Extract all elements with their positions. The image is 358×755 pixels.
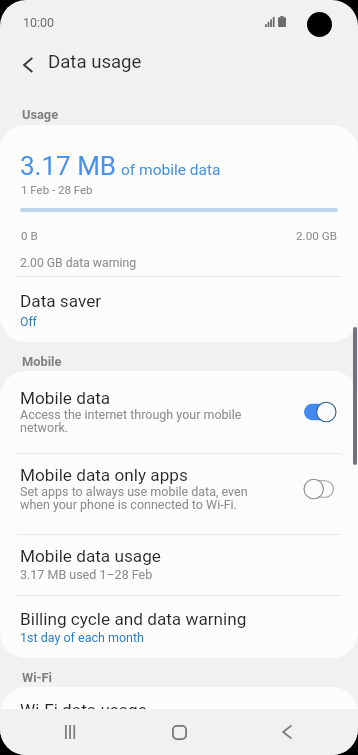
staticText: 3.17 MB used 1–28 Feb [20, 567, 153, 582]
button[interactable]: Mobile data [0, 371, 358, 453]
staticText: 10:00 [23, 15, 55, 30]
button[interactable]: Home [143, 709, 215, 755]
staticText: Off [20, 315, 37, 329]
staticText: Usage [22, 107, 59, 122]
staticText: Mobile data [20, 388, 111, 408]
button[interactable]: Navigate up [5, 43, 49, 87]
staticText: 2.00 GB [296, 229, 337, 243]
button[interactable]: Data saver [0, 277, 358, 342]
staticText: Mobile [22, 354, 62, 369]
button[interactable]: Mobile data only apps [0, 454, 358, 534]
button[interactable]: Recent apps [36, 709, 108, 755]
staticText: Billing cycle and data warning [20, 609, 247, 629]
staticText: 0 B [21, 229, 38, 243]
staticText: Data usage [48, 51, 142, 73]
staticText: of mobile data [121, 161, 221, 179]
staticText: 2.00 GB data warning [20, 256, 137, 270]
button[interactable]: Mobile data usage [0, 535, 358, 595]
staticText: Data saver [20, 291, 102, 311]
staticText: 1 Feb - 28 Feb [21, 183, 93, 196]
button[interactable]: Back [251, 709, 323, 755]
staticText: Wi-Fi data usage [20, 700, 147, 720]
staticText: Wi-Fi [22, 670, 52, 685]
button[interactable]: Wi-Fi data usage [0, 687, 358, 749]
staticText: 0 B used 1–28 Feb [20, 721, 124, 736]
staticText: Mobile data only apps [20, 465, 188, 485]
staticText: 3.17 MB [20, 151, 117, 181]
staticText: Access the internet through your mobile … [20, 409, 268, 435]
staticText: 1st day of each month [20, 630, 144, 645]
staticText: Set apps to always use mobile data, even… [20, 486, 268, 512]
staticText: Mobile data usage [20, 546, 161, 566]
button[interactable]: Billing cycle and data warning [0, 596, 358, 658]
